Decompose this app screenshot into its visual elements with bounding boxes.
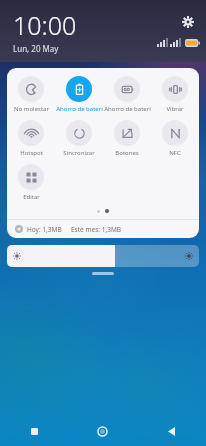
button[interactable]: Recent apps: [0, 416, 68, 446]
button[interactable]: Hotspot: [7, 119, 55, 158]
button[interactable]: Brightness: [7, 245, 199, 267]
button[interactable]: Back: [137, 416, 206, 446]
button[interactable]: Ahorro de bateri: [55, 75, 103, 114]
staticText: Hoy: 1,3MB: [27, 225, 62, 234]
staticText: Ahorro de bateri: [104, 105, 151, 113]
button[interactable]: Vibrar: [151, 75, 199, 114]
staticText: Ahorro de bateri: [56, 105, 103, 113]
button[interactable]: No molestar: [7, 75, 55, 114]
staticText: 10:00: [13, 8, 77, 42]
staticText: Vibrar: [166, 105, 184, 113]
staticText: Hotspot: [20, 149, 43, 157]
button[interactable]: Settings: [178, 12, 198, 32]
staticText: Este mes: 1,3MB: [71, 225, 122, 234]
staticText: Lun, 20 May: [13, 43, 59, 54]
button[interactable]: Hoy: 1,3MB: [7, 220, 199, 238]
button[interactable]: Ahorro de bateri: [103, 75, 151, 114]
button[interactable]: NFC: [151, 119, 199, 158]
button[interactable]: Editar: [7, 163, 55, 202]
staticText: Botones: [115, 149, 139, 157]
staticText: No molestar: [14, 105, 49, 113]
button[interactable]: Sincronizar: [55, 119, 103, 158]
button[interactable]: Botones: [103, 119, 151, 158]
button[interactable]: Home: [68, 416, 137, 446]
staticText: NFC: [169, 149, 181, 157]
staticText: Editar: [23, 193, 40, 201]
staticText: Sincronizar: [63, 149, 95, 157]
